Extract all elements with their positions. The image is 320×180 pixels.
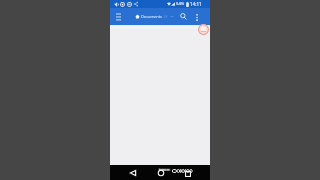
button[interactable]: Home	[155, 167, 166, 178]
staticText: Documents	[141, 14, 162, 19]
button[interactable]: Screen recorder	[198, 24, 209, 35]
button[interactable]: Recent apps	[182, 168, 193, 179]
staticText: 14:11	[190, 1, 202, 7]
button[interactable]: More options	[192, 12, 202, 22]
staticText: 54%	[176, 1, 185, 7]
button[interactable]: Back	[127, 167, 138, 178]
button[interactable]: Search	[178, 11, 189, 22]
button[interactable]: Open navigation drawer	[113, 11, 124, 22]
